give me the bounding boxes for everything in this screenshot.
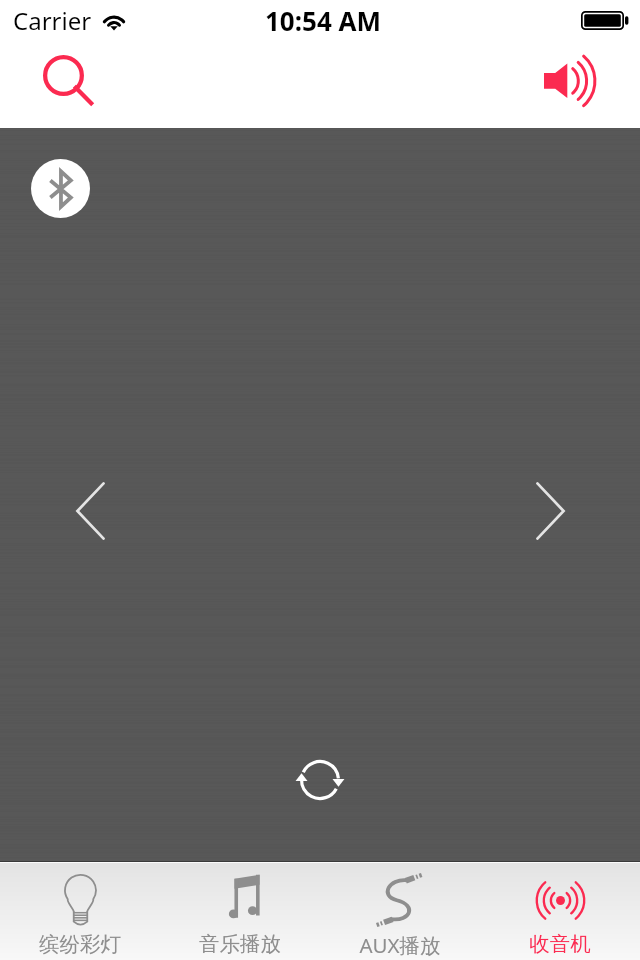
- staticText: 缤纷彩灯: [39, 931, 121, 957]
- button[interactable]: 收音机: [480, 861, 640, 960]
- button[interactable]: 缤纷彩灯: [0, 861, 160, 960]
- button[interactable]: Refresh: [284, 744, 356, 816]
- button[interactable]: AUX播放: [320, 861, 480, 960]
- staticText: 10:54 AM: [265, 3, 382, 38]
- staticText: 音乐播放: [199, 931, 281, 957]
- staticText: Carrier: [13, 4, 92, 37]
- staticText: AUX播放: [359, 931, 441, 959]
- button[interactable]: 音乐播放: [160, 861, 320, 960]
- button[interactable]: Search: [30, 44, 108, 116]
- button[interactable]: Previous: [66, 476, 114, 546]
- staticText: 收音机: [529, 931, 591, 957]
- button[interactable]: Bluetooth: [31, 159, 90, 218]
- button[interactable]: Next: [526, 476, 574, 546]
- button[interactable]: Volume: [532, 45, 606, 117]
